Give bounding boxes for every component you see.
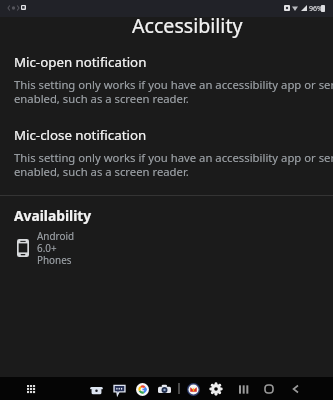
button[interactable]: Phone: [86, 379, 106, 399]
button[interactable]: Back: [286, 379, 306, 399]
button[interactable]: Gmail: [183, 379, 203, 399]
button[interactable]: Messages: [109, 379, 129, 399]
staticText: Accessibility: [132, 12, 243, 38]
button[interactable]: Camera: [154, 379, 174, 399]
staticText: 96%: [309, 4, 323, 14]
button[interactable]: Recents: [233, 379, 253, 399]
button[interactable]: Google: [132, 379, 152, 399]
button[interactable]: Home: [259, 379, 279, 399]
staticText: Mic-open notification: [14, 53, 147, 71]
staticText: This setting only works if you have an a…: [14, 150, 333, 179]
staticText: Availability: [14, 206, 92, 225]
staticText: Android 6.0+ Phones: [37, 229, 75, 266]
button[interactable]: Settings: [206, 379, 226, 399]
button[interactable]: Apps: [21, 379, 41, 399]
staticText: Mic-close notification: [14, 126, 147, 144]
staticText: This setting only works if you have an a…: [14, 77, 333, 106]
